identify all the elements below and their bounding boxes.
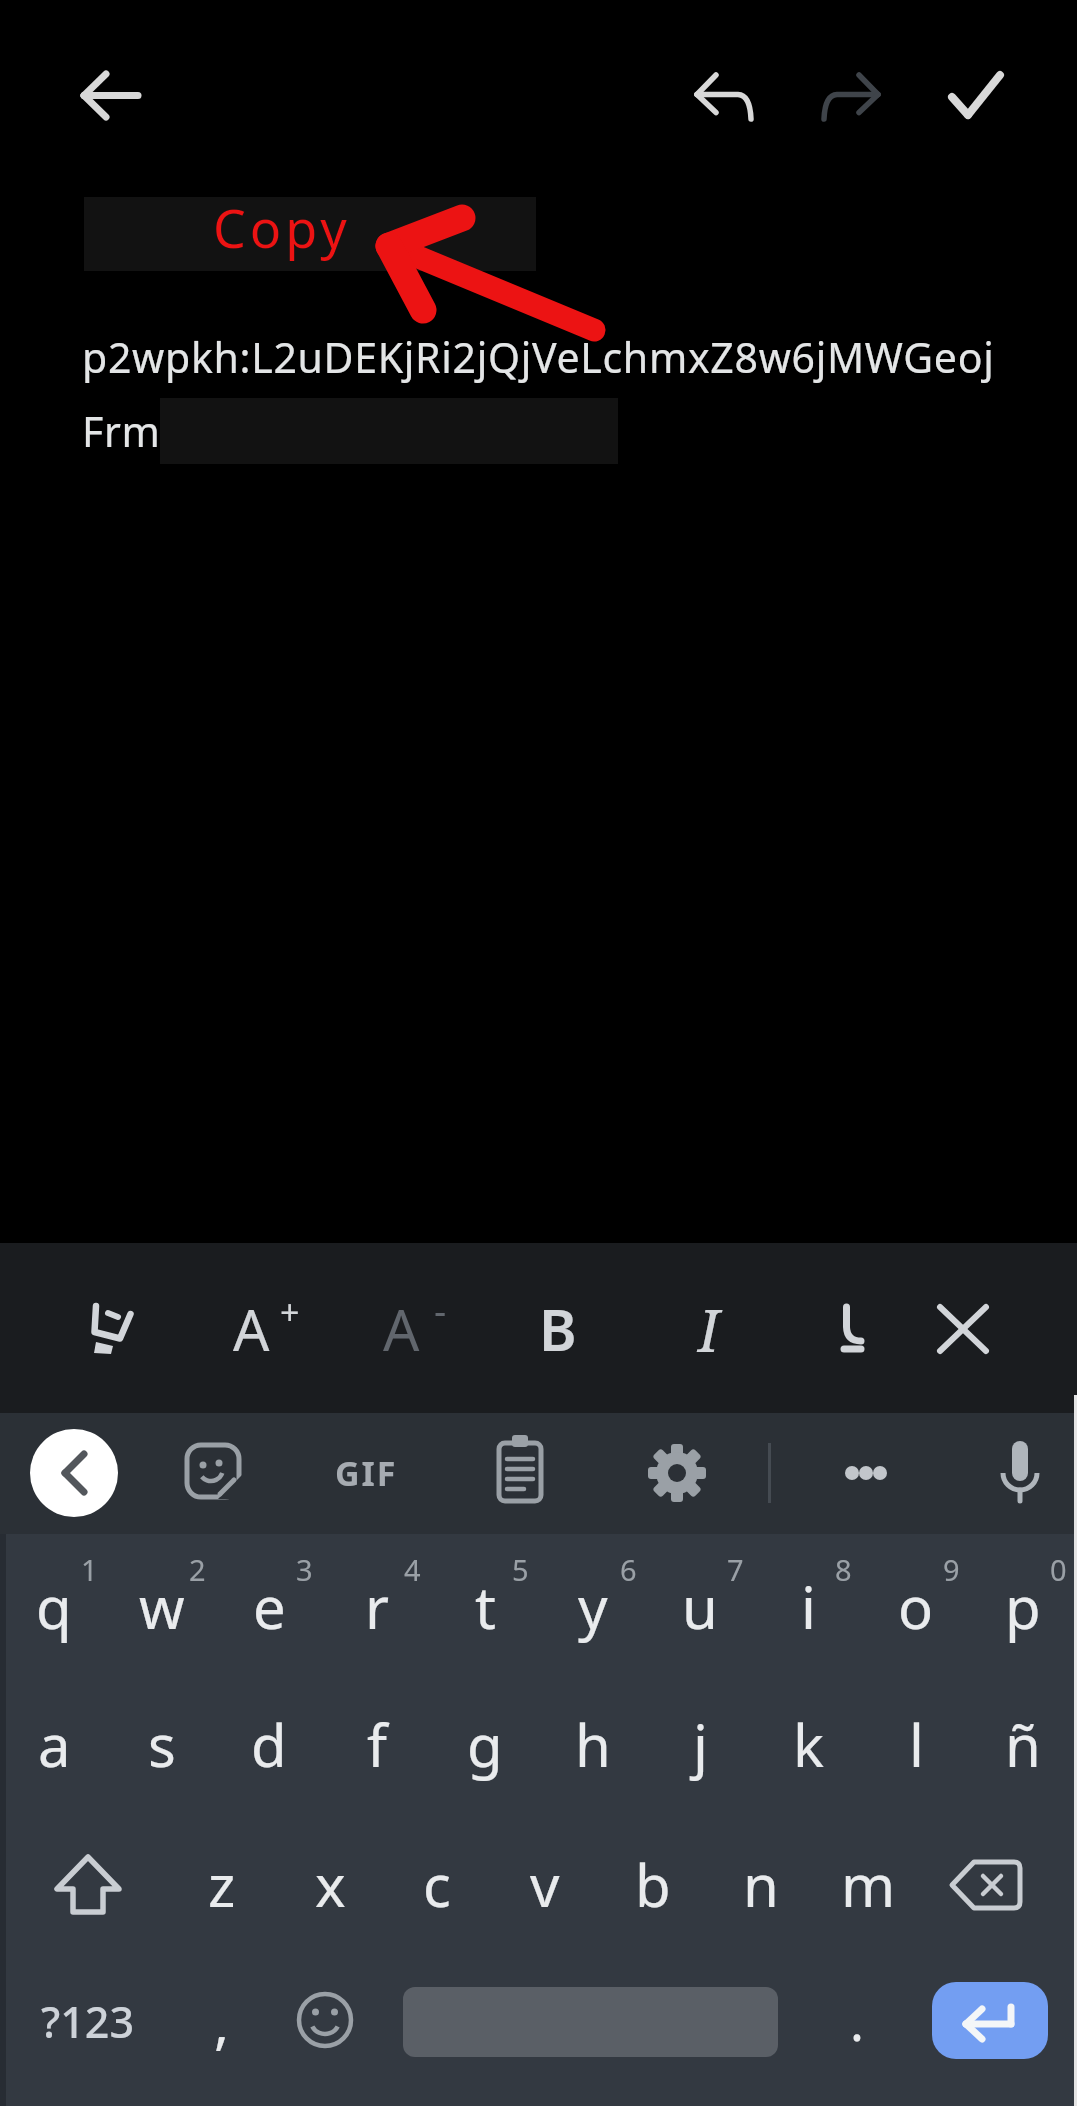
button[interactable] (913, 1279, 1013, 1379)
button[interactable]: d (215, 1675, 323, 1813)
staticText: n (743, 1845, 779, 1924)
button[interactable]: ?123 (0, 1954, 168, 2106)
button[interactable] (627, 1423, 727, 1523)
button[interactable]: . (798, 1954, 915, 2106)
staticText: I (698, 1290, 720, 1369)
button[interactable] (820, 1285, 880, 1365)
button[interactable]: c (383, 1815, 491, 1953)
staticText: m (841, 1845, 896, 1924)
button[interactable]: l (862, 1675, 970, 1813)
button[interactable] (800, 45, 900, 145)
button[interactable]: p (969, 1537, 1077, 1675)
button[interactable]: k (754, 1675, 862, 1813)
button[interactable] (674, 45, 774, 145)
staticText: 1 (81, 1550, 98, 1589)
button[interactable]: GIF (316, 1423, 416, 1523)
staticText: t (475, 1567, 496, 1646)
staticText: h (575, 1705, 611, 1784)
button[interactable] (924, 45, 1029, 150)
button[interactable]: f (323, 1675, 431, 1813)
staticText: k (793, 1705, 824, 1784)
button[interactable]: r (323, 1537, 431, 1675)
staticText: . (850, 1985, 864, 2056)
button[interactable]: B (508, 1279, 608, 1379)
staticText: 4 (404, 1550, 421, 1589)
staticText: e (253, 1567, 286, 1646)
button[interactable] (276, 1954, 384, 2106)
button[interactable]: h (539, 1675, 647, 1813)
staticText: s (148, 1705, 176, 1784)
button[interactable]: A (212, 1279, 312, 1379)
button[interactable]: t (431, 1537, 539, 1675)
staticText: v (530, 1845, 560, 1924)
button[interactable] (970, 1423, 1070, 1523)
staticText: 9 (943, 1550, 960, 1589)
staticText: y (578, 1567, 608, 1646)
button[interactable]: y (539, 1537, 647, 1675)
button[interactable] (163, 1423, 263, 1523)
button[interactable]: w (108, 1537, 216, 1675)
staticText: A (233, 1290, 270, 1368)
staticText: A (383, 1290, 420, 1368)
button[interactable]: v (491, 1815, 599, 1953)
button[interactable]: m (814, 1815, 922, 1953)
button[interactable]: a (0, 1675, 108, 1813)
button[interactable]: g (431, 1675, 539, 1813)
staticText: w (139, 1567, 185, 1646)
staticText: p (1005, 1567, 1041, 1646)
button[interactable]: q (0, 1537, 108, 1675)
staticText: Copy (213, 192, 351, 263)
staticText: j (693, 1705, 708, 1784)
button[interactable]: u (646, 1537, 754, 1675)
button[interactable]: s (108, 1675, 216, 1813)
button[interactable]: n (707, 1815, 815, 1953)
staticText: p2wpkh:L2uDEKjRi2jQjVeLchmxZ8w6jMWGeoj (82, 329, 995, 385)
button[interactable] (0, 1815, 168, 1953)
staticText: - (434, 1284, 447, 1336)
staticText: d (251, 1705, 287, 1784)
button[interactable]: A (362, 1279, 462, 1379)
staticText: Frm (82, 403, 161, 459)
button[interactable]: z (168, 1815, 276, 1953)
staticText: a (38, 1705, 71, 1784)
staticText: 3 (296, 1550, 313, 1589)
button[interactable]: j (646, 1675, 754, 1813)
button[interactable]: ñ (969, 1675, 1077, 1813)
staticText: x (315, 1845, 346, 1924)
staticText: f (367, 1705, 387, 1784)
staticText: GIF (335, 1450, 398, 1496)
staticText: r (365, 1567, 389, 1646)
staticText: c (423, 1845, 451, 1924)
staticText: 7 (727, 1550, 744, 1589)
button[interactable]: o (862, 1537, 970, 1675)
staticText: + (280, 1289, 300, 1335)
button[interactable] (24, 1423, 124, 1523)
button[interactable]: x (276, 1815, 384, 1953)
staticText: 0 (1050, 1550, 1067, 1589)
staticText: B (539, 1290, 577, 1368)
button[interactable]: , (168, 1954, 276, 2106)
staticText: 2 (189, 1550, 206, 1589)
staticText: g (467, 1705, 503, 1784)
button[interactable] (806, 1423, 926, 1523)
staticText: 5 (512, 1550, 529, 1589)
staticText: 8 (835, 1550, 852, 1589)
button[interactable] (58, 43, 163, 148)
staticText: q (36, 1567, 72, 1646)
button[interactable]: b (599, 1815, 707, 1953)
button[interactable] (932, 1982, 1048, 2059)
staticText: b (635, 1845, 671, 1924)
staticText: z (208, 1845, 236, 1924)
button[interactable]: I (659, 1279, 759, 1379)
button[interactable] (922, 1815, 1077, 1953)
staticText: 6 (620, 1550, 637, 1589)
staticText: l (909, 1705, 924, 1784)
staticText: , (214, 1984, 230, 2060)
button[interactable] (470, 1423, 570, 1523)
staticText: u (682, 1567, 718, 1646)
staticText: ?123 (41, 1992, 135, 2051)
button[interactable]: e (215, 1537, 323, 1675)
button[interactable] (62, 1281, 158, 1377)
button[interactable]: i (754, 1537, 862, 1675)
